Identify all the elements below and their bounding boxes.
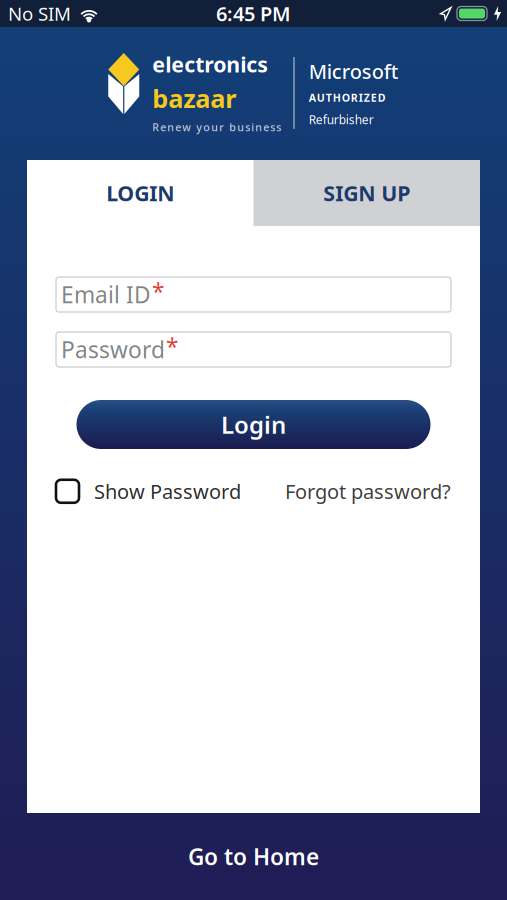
button[interactable]: Show Password (56, 478, 241, 505)
staticText: A U T H O R I Z E D (309, 91, 386, 105)
staticText: * (152, 276, 164, 306)
button[interactable]: Login (76, 400, 430, 449)
staticText: Forgot password? (285, 478, 451, 505)
staticText: No SIM (8, 1, 71, 26)
staticText: Microsoft (309, 58, 399, 85)
button[interactable]: SIGN UP (253, 160, 480, 226)
staticText: Refurbisher (309, 112, 374, 128)
staticText: Show Password (94, 478, 241, 505)
staticText: electronics (152, 50, 268, 78)
staticText: 6:45 PM (216, 0, 291, 27)
staticText: bazaar (152, 81, 236, 115)
button[interactable]: LOGIN (27, 160, 253, 226)
staticText: Password (61, 334, 165, 364)
staticText: Email ID (61, 279, 151, 309)
button[interactable]: Forgot password? (285, 478, 451, 505)
staticText: R e n e w y o u r b u s i n e s s (152, 120, 281, 134)
staticText: LOGIN (106, 179, 174, 207)
staticText: Login (221, 409, 286, 440)
staticText: SIGN UP (323, 179, 410, 207)
staticText: * (166, 331, 178, 361)
staticText: Go to Home (188, 841, 319, 871)
button[interactable]: Go to Home (188, 841, 319, 871)
